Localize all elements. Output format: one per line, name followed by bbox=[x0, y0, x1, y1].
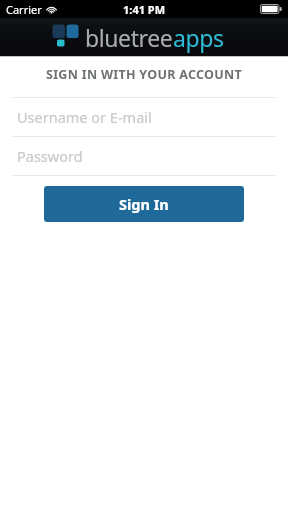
button[interactable]: Username or E-mail bbox=[0, 98, 288, 136]
staticText: apps bbox=[173, 22, 224, 53]
staticText: bluetree bbox=[85, 22, 173, 53]
staticText: SIGN IN WITH YOUR ACCOUNT bbox=[0, 66, 288, 83]
staticText: Username or E-mail bbox=[17, 107, 152, 127]
staticText: Password bbox=[17, 146, 83, 166]
staticText: 1:41 PM bbox=[123, 2, 166, 17]
staticText: Sign In bbox=[119, 194, 169, 214]
staticText: Carrier bbox=[6, 2, 42, 17]
button[interactable]: Sign In bbox=[44, 186, 244, 222]
button[interactable]: Password bbox=[0, 137, 288, 175]
